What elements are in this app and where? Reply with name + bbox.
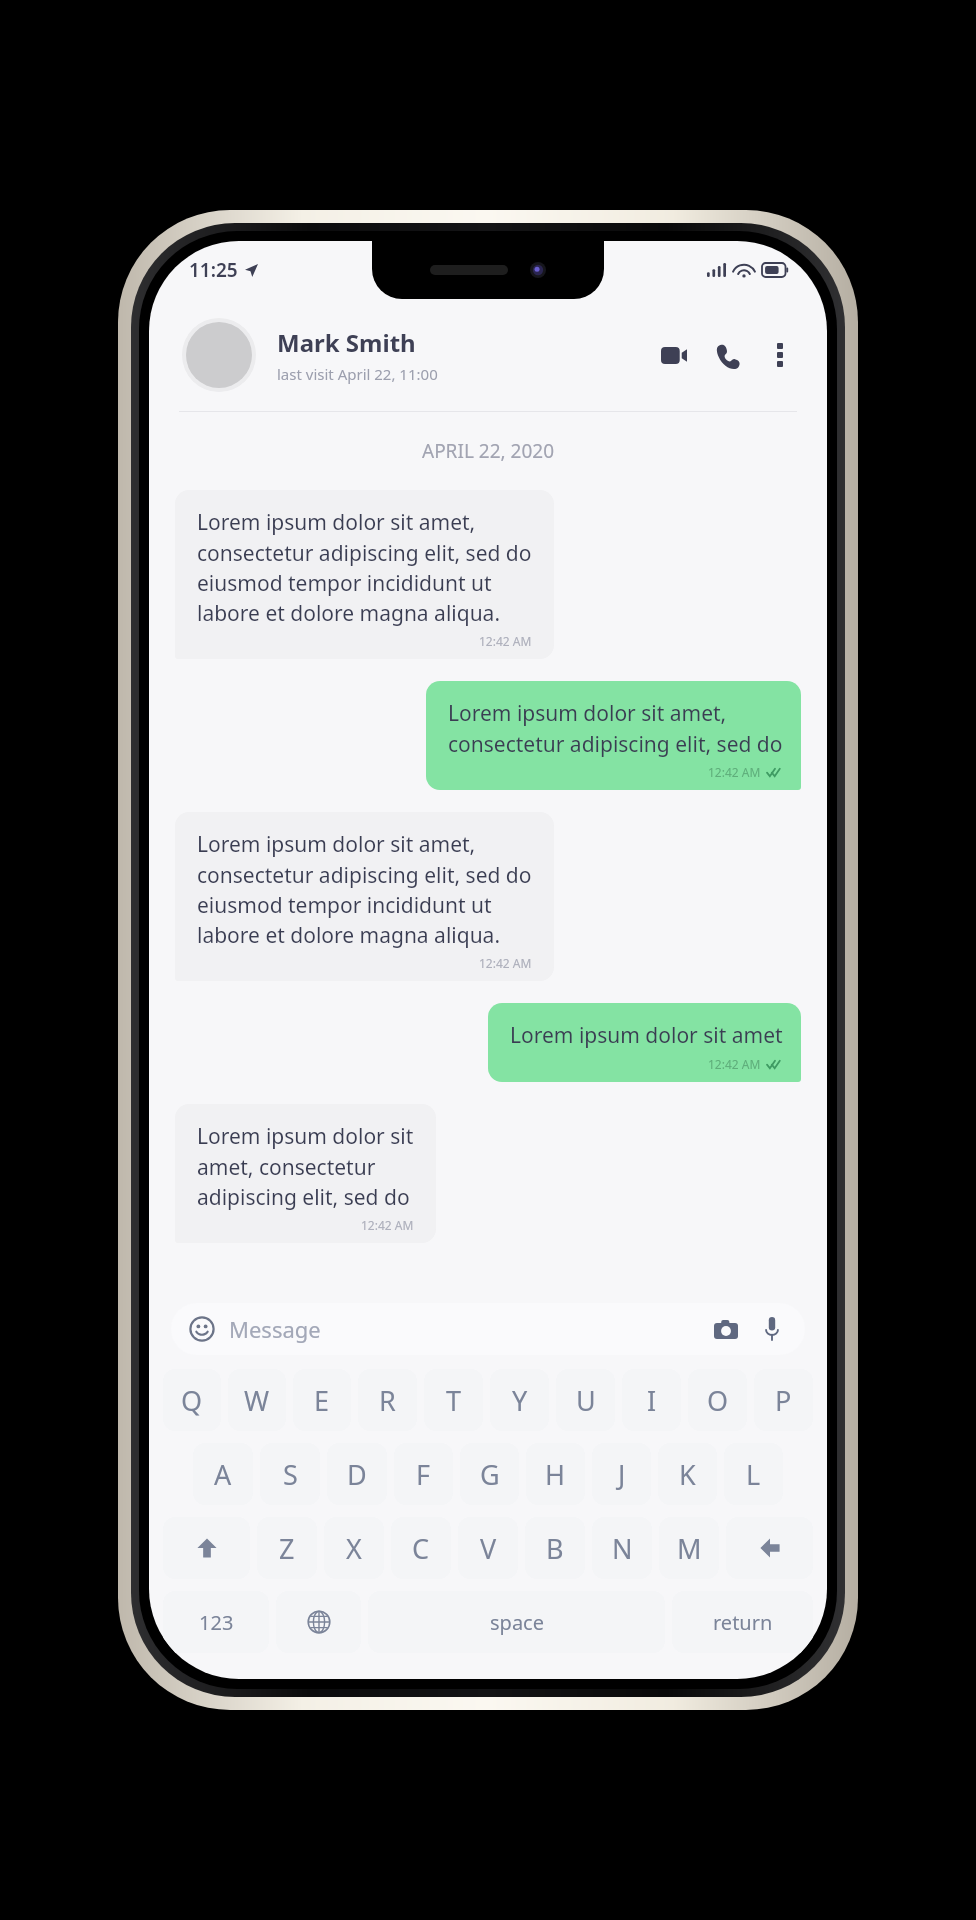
button[interactable]: A: [193, 1443, 253, 1505]
button[interactable]: V: [458, 1517, 518, 1579]
staticText: K: [679, 1456, 696, 1493]
button[interactable]: F: [394, 1443, 453, 1505]
staticText: V: [480, 1530, 497, 1567]
button[interactable]: O: [688, 1369, 747, 1431]
staticText: C: [412, 1530, 430, 1567]
button[interactable]: N: [592, 1517, 652, 1579]
button[interactable]: M: [659, 1517, 719, 1579]
button[interactable]: X: [324, 1517, 384, 1579]
staticText: Message: [229, 1314, 711, 1344]
staticText: D: [347, 1456, 367, 1493]
button[interactable]: E: [293, 1369, 351, 1431]
button[interactable]: Y: [490, 1369, 549, 1431]
staticText: U: [576, 1382, 596, 1419]
staticText: 12:42 AM: [479, 955, 532, 971]
button[interactable]: K: [658, 1443, 717, 1505]
staticText: T: [446, 1382, 462, 1419]
staticText: 12:42 AM: [708, 764, 761, 780]
button[interactable]: Lorem ipsum dolor sit amet, consectetur …: [175, 490, 554, 659]
button[interactable]: I: [622, 1369, 681, 1431]
staticText: B: [546, 1530, 564, 1567]
staticText: last visit April 22, 11:00: [277, 364, 438, 384]
button[interactable]: R: [358, 1369, 417, 1431]
staticText: 12:42 AM: [479, 633, 532, 649]
button[interactable]: Voice message: [757, 1314, 787, 1344]
button[interactable]: Shift: [163, 1517, 250, 1579]
staticText: Lorem ipsum dolor sit amet, consectetur …: [448, 699, 783, 758]
button[interactable]: L: [724, 1443, 783, 1505]
button[interactable]: return: [672, 1591, 813, 1653]
button[interactable]: D: [327, 1443, 387, 1505]
button[interactable]: Video call: [657, 338, 691, 372]
staticText: N: [612, 1530, 633, 1567]
button[interactable]: G: [460, 1443, 519, 1505]
staticText: F: [416, 1456, 431, 1493]
button[interactable]: Lorem ipsum dolor sit amet, consectetur …: [175, 1104, 436, 1243]
staticText: L: [746, 1456, 761, 1493]
button[interactable]: Backspace: [726, 1517, 813, 1579]
staticText: Lorem ipsum dolor sit amet, consectetur …: [197, 1122, 414, 1211]
button[interactable]: C: [391, 1517, 451, 1579]
staticText: APRIL 22, 2020: [149, 438, 827, 464]
button[interactable]: Message: [171, 1303, 805, 1355]
staticText: E: [314, 1382, 330, 1419]
button[interactable]: W: [228, 1369, 286, 1431]
button[interactable]: Change language: [276, 1591, 361, 1653]
staticText: space: [490, 1609, 544, 1636]
staticText: Y: [512, 1382, 528, 1419]
button[interactable]: space: [368, 1591, 665, 1653]
staticText: A: [214, 1456, 232, 1493]
staticText: G: [480, 1456, 500, 1493]
staticText: W: [244, 1382, 270, 1419]
button[interactable]: P: [754, 1369, 813, 1431]
button[interactable]: Camera: [711, 1314, 741, 1344]
staticText: Lorem ipsum dolor sit amet, consectetur …: [197, 508, 532, 627]
staticText: M: [677, 1530, 702, 1567]
staticText: Lorem ipsum dolor sit amet: [510, 1021, 783, 1050]
button[interactable]: B: [525, 1517, 585, 1579]
staticText: O: [707, 1382, 729, 1419]
button[interactable]: Lorem ipsum dolor sit amet: [488, 1003, 801, 1082]
staticText: H: [545, 1456, 566, 1493]
button[interactable]: T: [424, 1369, 483, 1431]
staticText: S: [283, 1456, 298, 1493]
staticText: Z: [279, 1530, 295, 1567]
staticText: 12:42 AM: [361, 1217, 414, 1233]
button[interactable]: J: [592, 1443, 651, 1505]
staticText: 123: [199, 1609, 234, 1636]
button[interactable]: H: [526, 1443, 585, 1505]
staticText: 11:25: [189, 257, 238, 283]
staticText: J: [618, 1456, 626, 1493]
staticText: Lorem ipsum dolor sit amet, consectetur …: [197, 830, 532, 949]
staticText: X: [346, 1530, 362, 1567]
staticText: return: [713, 1609, 773, 1636]
staticText: Q: [181, 1382, 203, 1419]
staticText: 12:42 AM: [708, 1056, 761, 1072]
button[interactable]: Lorem ipsum dolor sit amet, consectetur …: [426, 681, 801, 790]
staticText: I: [647, 1382, 657, 1419]
button[interactable]: U: [556, 1369, 615, 1431]
button[interactable]: 123: [163, 1591, 269, 1653]
button[interactable]: Q: [163, 1369, 221, 1431]
staticText: R: [379, 1382, 396, 1419]
button[interactable]: Contact avatar: [181, 317, 257, 393]
button[interactable]: Lorem ipsum dolor sit amet, consectetur …: [175, 812, 554, 981]
button[interactable]: More options: [763, 338, 797, 372]
button[interactable]: S: [260, 1443, 320, 1505]
staticText: Mark Smith: [277, 326, 416, 359]
staticText: P: [775, 1382, 792, 1419]
button[interactable]: Voice call: [711, 338, 745, 372]
button[interactable]: Z: [257, 1517, 317, 1579]
